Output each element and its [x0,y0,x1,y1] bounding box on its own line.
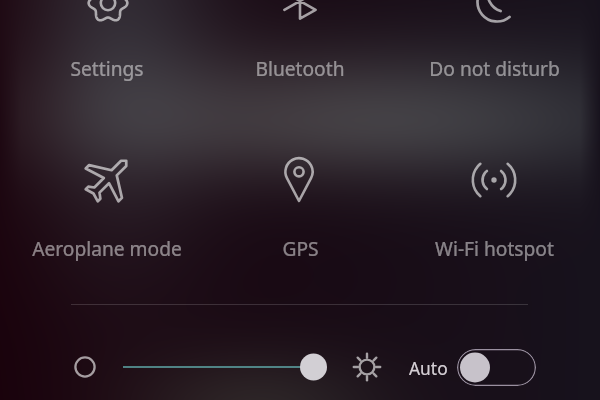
button[interactable]: Auto [409,356,448,380]
staticText: Aeroplane mode [32,235,182,261]
button[interactable]: Auto brightness toggle [457,349,536,386]
button[interactable]: Aeroplane mode [85,154,133,202]
button[interactable]: Bluetooth [274,0,326,27]
button[interactable]: GPS [275,156,323,204]
button[interactable]: Do not disturb [471,0,523,28]
staticText: Settings [70,55,144,81]
button[interactable]: Brightness slider [118,352,334,382]
button[interactable]: Maximum brightness [351,351,383,383]
button[interactable]: Settings [86,0,130,25]
staticText: Wi-Fi hotspot [435,235,554,261]
staticText: Do not disturb [429,55,560,81]
staticText: GPS [282,235,319,261]
staticText: Bluetooth [255,55,345,81]
button[interactable]: Wi-Fi hotspot [471,157,517,203]
staticText: Auto [409,356,448,380]
button[interactable]: Minimum brightness [71,353,99,381]
